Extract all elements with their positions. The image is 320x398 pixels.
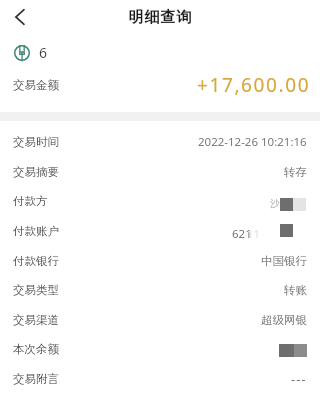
staticText: 本次余额 <box>13 342 59 356</box>
staticText: 转账 <box>284 283 307 297</box>
button[interactable]: 付款账户 <box>0 216 320 246</box>
button[interactable]: 本次余额 <box>0 334 320 364</box>
staticText: 交易渠道 <box>13 313 59 327</box>
staticText: 交易时间 <box>13 135 59 149</box>
staticText: 明细查询 <box>128 8 192 27</box>
button[interactable]: 付款银行 <box>0 246 320 276</box>
button[interactable]: 交易时间 <box>0 127 320 157</box>
staticText: 转存 <box>284 165 307 179</box>
staticText: 交易类型 <box>13 283 59 297</box>
staticText: 621 <box>232 226 252 242</box>
button[interactable]: 交易渠道 <box>0 305 320 335</box>
staticText: 交易附言 <box>13 372 59 386</box>
button[interactable]: 交易类型 <box>0 275 320 305</box>
staticText: 交易摘要 <box>13 165 59 179</box>
staticText: +17,600.00 <box>197 72 311 98</box>
staticText: 交易金额 <box>13 78 59 92</box>
staticText: 沙 <box>270 198 280 210</box>
staticText: 付款账户 <box>13 224 59 238</box>
button[interactable]: 付款方 <box>0 186 320 216</box>
staticText: 6 <box>39 43 48 62</box>
button[interactable]: Back <box>2 0 38 34</box>
button[interactable]: 交易摘要 <box>0 157 320 187</box>
staticText: 中国银行 <box>261 254 307 268</box>
button[interactable]: 交易附言 <box>0 364 320 394</box>
staticText: 付款方 <box>13 194 48 208</box>
staticText: 付款银行 <box>13 254 59 268</box>
staticText: 11 <box>247 226 261 242</box>
staticText: 2022-12-26 10:21:16 <box>198 134 307 150</box>
staticText: --- <box>291 370 307 388</box>
staticText: 超级网银 <box>261 313 307 327</box>
